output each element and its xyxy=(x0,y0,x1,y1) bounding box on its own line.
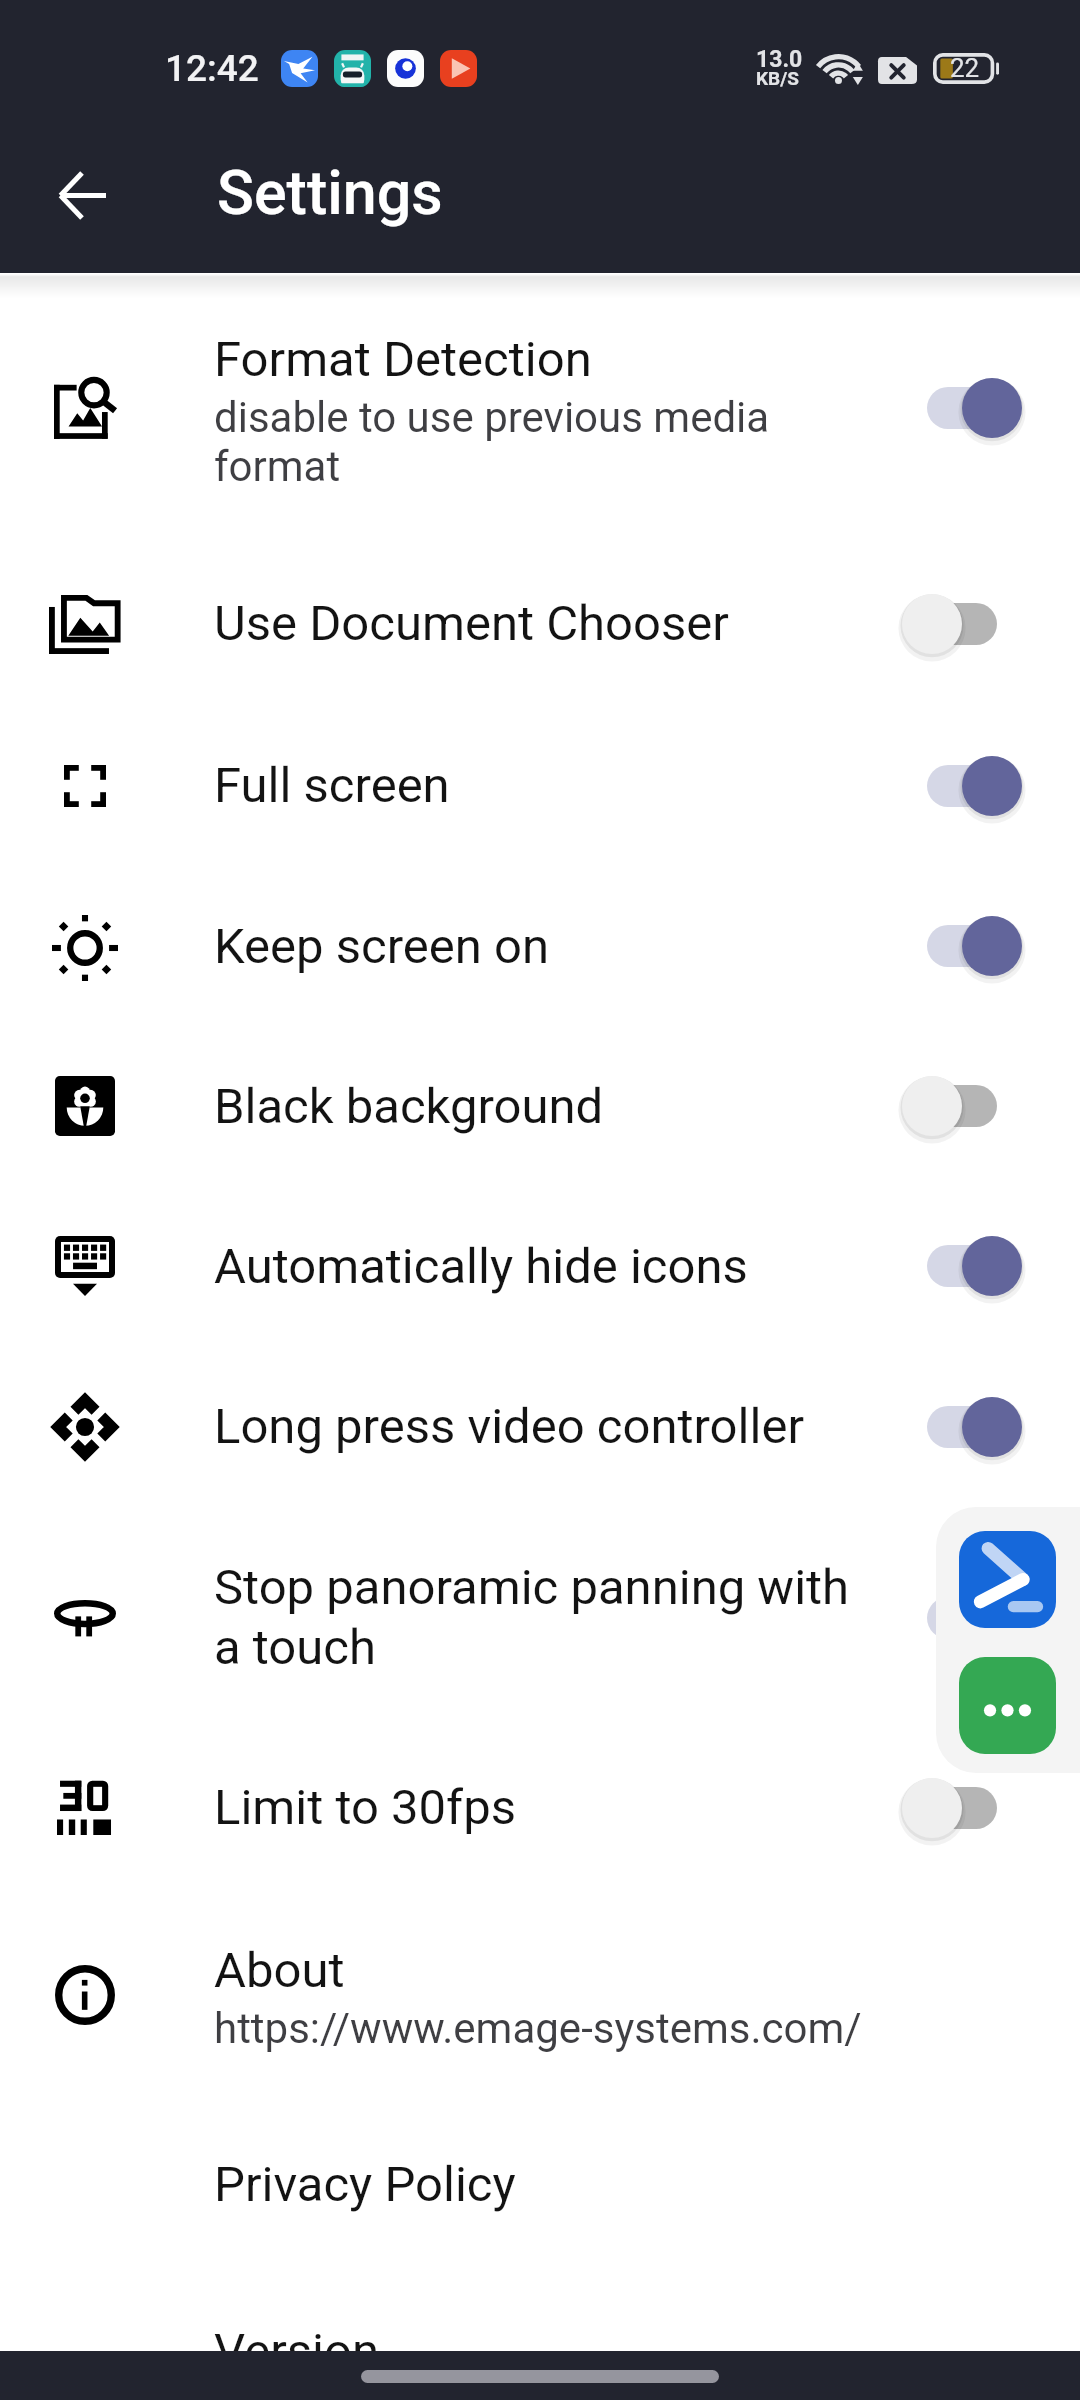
button[interactable]: On xyxy=(887,1371,1080,1483)
staticText: 13.0 xyxy=(756,46,803,73)
button[interactable]: More options xyxy=(959,1657,1056,1754)
button[interactable]: Limit to 30fps xyxy=(0,1727,1080,1888)
button[interactable]: Version xyxy=(0,2268,1080,2400)
staticText: Black background xyxy=(214,1078,604,1135)
button[interactable]: Off xyxy=(887,1050,1080,1162)
staticText: KB/S xyxy=(756,67,799,89)
staticText: Format Detection xyxy=(214,331,592,388)
button[interactable]: Terminal xyxy=(959,1531,1056,1628)
staticText: Privacy Policy xyxy=(214,2156,516,2213)
button[interactable]: On xyxy=(887,730,1080,842)
button[interactable]: Automatically hide icons xyxy=(0,1187,1080,1345)
staticText: Limit to 30fps xyxy=(214,1779,516,1836)
staticText: 12:42 xyxy=(165,47,259,90)
button[interactable]: About xyxy=(0,1888,1080,2101)
button[interactable]: Keep screen on xyxy=(0,867,1080,1025)
staticText: Stop panoramic panning with a touch xyxy=(214,1559,884,1676)
staticText: https://www.emage-systems.com/ xyxy=(214,2004,862,2053)
staticText: 22 xyxy=(950,53,980,83)
button[interactable]: Stop panoramic panning with a touch xyxy=(0,1508,1080,1727)
button[interactable]: On xyxy=(887,1562,1080,1674)
button[interactable]: Privacy Policy xyxy=(0,2101,1080,2268)
button[interactable]: Off xyxy=(887,568,1080,680)
button[interactable]: Format Detection xyxy=(0,273,1080,543)
button[interactable]: Back xyxy=(36,149,128,241)
button[interactable]: Off xyxy=(887,1752,1080,1864)
button[interactable]: Full screen xyxy=(0,704,1080,867)
button[interactable]: On xyxy=(887,1210,1080,1322)
staticText: Settings xyxy=(217,157,443,228)
button[interactable]: Long press video controller xyxy=(0,1345,1080,1508)
staticText: Use Document Chooser xyxy=(214,595,729,652)
button[interactable]: On xyxy=(887,352,1080,464)
staticText: About xyxy=(214,1942,345,1999)
staticText: disable to use previous media format xyxy=(214,393,884,491)
staticText: Version xyxy=(214,2323,379,2380)
staticText: Keep screen on xyxy=(214,918,550,975)
staticText: Full screen xyxy=(214,757,450,814)
button[interactable]: Use Document Chooser xyxy=(0,543,1080,704)
button[interactable]: On xyxy=(887,890,1080,1002)
staticText: Automatically hide icons xyxy=(214,1238,748,1295)
staticText: Long press video controller xyxy=(214,1398,804,1455)
button[interactable]: Black background xyxy=(0,1025,1080,1187)
